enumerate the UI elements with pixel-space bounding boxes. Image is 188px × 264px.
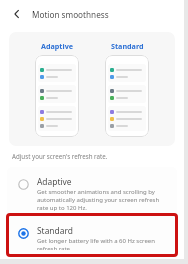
staticText: Adaptive [37, 176, 72, 187]
button[interactable]: Adaptive [7, 172, 177, 216]
staticText: Standard [111, 41, 144, 51]
staticText: Get smoother animations and scrolling by… [37, 188, 167, 212]
staticText: Adjust your screen's refresh rate. [12, 152, 108, 160]
staticText: Get longer battery life with a 60 Hz scr… [37, 237, 167, 250]
button[interactable]: Back [8, 5, 26, 23]
staticText: Adaptive [41, 41, 74, 51]
staticText: Motion smoothness [32, 9, 109, 20]
staticText: Standard [37, 225, 73, 236]
button[interactable]: Standard [7, 221, 177, 254]
